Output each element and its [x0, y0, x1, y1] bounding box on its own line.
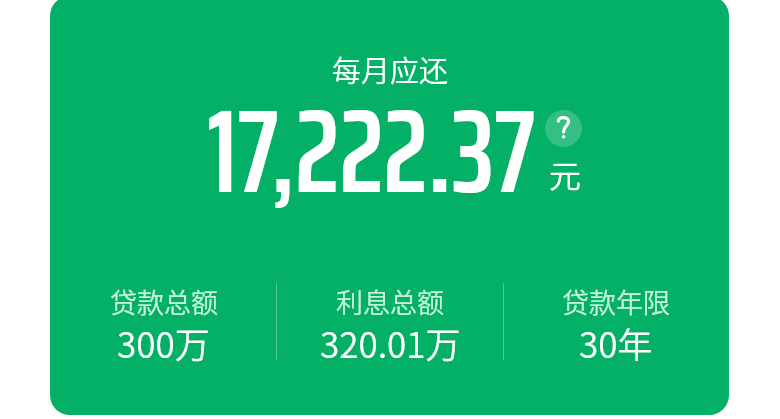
button[interactable] — [50, 0, 729, 414]
button[interactable]: Help — [545, 110, 582, 147]
button[interactable]: 贷款年限 — [503, 282, 729, 366]
staticText: 每月应还 — [332, 48, 449, 88]
staticText: 贷款总额 — [110, 282, 218, 321]
staticText: 贷款年限 — [562, 282, 670, 321]
staticText: 元 — [549, 151, 582, 197]
staticText: 300万 — [117, 317, 210, 368]
button[interactable]: 利息总额 — [277, 282, 503, 366]
staticText: 320.01万 — [320, 317, 461, 368]
button[interactable]: 贷款总额 — [50, 282, 277, 366]
staticText: 17,222.37 — [207, 58, 536, 244]
staticText: 利息总额 — [336, 282, 444, 321]
staticText: 30年 — [579, 317, 653, 368]
